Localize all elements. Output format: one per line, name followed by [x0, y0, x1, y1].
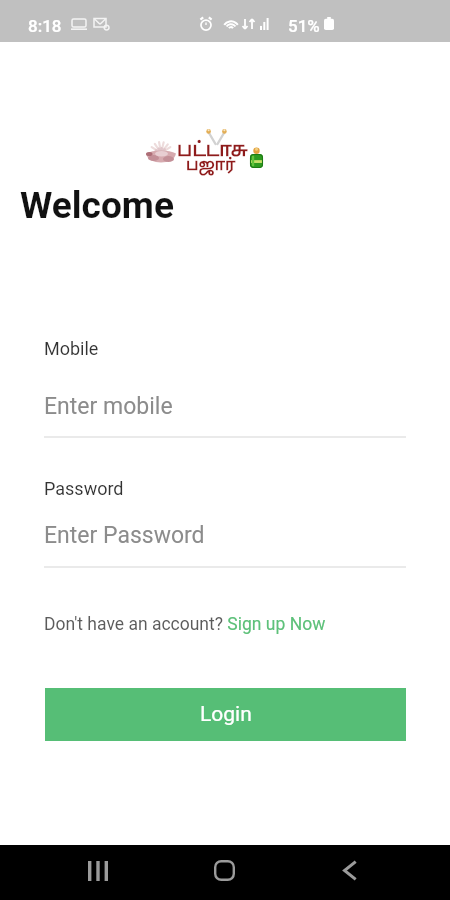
staticText: பட்டாசு [177, 139, 248, 163]
staticText: Mobile [44, 338, 99, 359]
staticText: 8:18 [28, 16, 62, 36]
staticText: Enter mobile [44, 393, 173, 420]
staticText: Login [200, 702, 252, 727]
button[interactable]: Login [45, 688, 406, 741]
button[interactable]: Recent apps [74, 843, 122, 898]
button[interactable]: Home [200, 843, 248, 898]
staticText: 51% [288, 16, 320, 36]
staticText: பஜார் [186, 156, 236, 176]
button[interactable]: Back [325, 843, 373, 898]
staticText: Welcome [20, 184, 174, 227]
staticText: Enter Password [44, 522, 205, 549]
button[interactable]: Don't have an account? Sign up Now [44, 614, 326, 635]
staticText: Password [44, 478, 124, 499]
